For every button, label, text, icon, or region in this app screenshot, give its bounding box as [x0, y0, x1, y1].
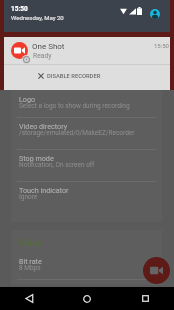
staticText: Video: [19, 238, 43, 249]
button[interactable]: Back: [0, 287, 58, 310]
button[interactable]: Touch indicator: [11, 181, 162, 213]
staticText: Video directory: [19, 122, 68, 130]
button[interactable]: DISABLE RECORDER: [4, 65, 170, 90]
staticText: 15:50: [154, 42, 169, 49]
staticText: Ready: [33, 52, 52, 60]
button[interactable]: User profile: [150, 9, 160, 19]
staticText: DISABLE RECORDER: [47, 73, 101, 80]
staticText: 8 Mbps: [19, 264, 41, 272]
staticText: Ignore: [19, 193, 38, 201]
staticText: Bit rate: [19, 257, 42, 265]
button[interactable]: Recents: [116, 287, 174, 310]
button[interactable]: Video directory: [11, 117, 162, 149]
button[interactable]: One Shot: [4, 37, 170, 64]
button[interactable]: Logo: [11, 90, 162, 117]
staticText: /storage/emulated/0/MakeEZ/Recorder: [19, 129, 135, 137]
button[interactable]: Record: [143, 257, 170, 284]
button[interactable]: Bit rate: [11, 252, 162, 280]
staticText: Select a logo to show during recording: [19, 102, 130, 110]
staticText: Wednesday, May 20: [11, 14, 64, 21]
staticText: Touch indicator: [19, 186, 69, 194]
staticText: Notification, On screen off: [19, 161, 95, 169]
staticText: Logo: [19, 95, 36, 103]
staticText: One Shot: [32, 42, 65, 51]
button[interactable]: Stop mode: [11, 149, 162, 181]
staticText: 15:50: [11, 5, 28, 13]
button[interactable]: Home: [58, 287, 116, 310]
staticText: Stop mode: [19, 154, 54, 162]
